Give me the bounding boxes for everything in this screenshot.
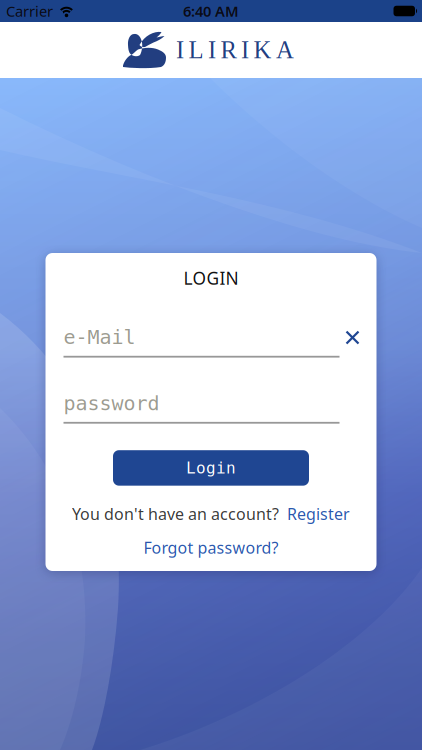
staticText: LOGIN (183, 266, 238, 289)
staticText: Carrier (6, 1, 53, 21)
staticText: I (176, 36, 184, 64)
button[interactable]: Forgot password? (143, 537, 278, 558)
staticText: Forgot password? (143, 537, 278, 558)
staticText: A (276, 36, 294, 64)
staticText: Login (186, 459, 236, 477)
button[interactable]: Login (113, 450, 309, 486)
staticText: You don't have an account? (72, 503, 279, 524)
staticText: R (220, 36, 236, 64)
secureTextField[interactable]: password (63, 392, 339, 415)
textField[interactable]: e-Mail (63, 325, 339, 349)
staticText: I (208, 36, 216, 64)
button[interactable]: Register (287, 503, 350, 524)
staticText: Register (287, 503, 350, 524)
staticText: 6:40 AM (183, 1, 239, 21)
staticText: I (241, 36, 249, 64)
staticText: password (63, 392, 159, 415)
staticText: L (188, 36, 203, 64)
staticText: e-Mail (63, 325, 135, 349)
button[interactable]: Clear e-Mail (341, 327, 363, 349)
staticText: K (253, 36, 271, 64)
